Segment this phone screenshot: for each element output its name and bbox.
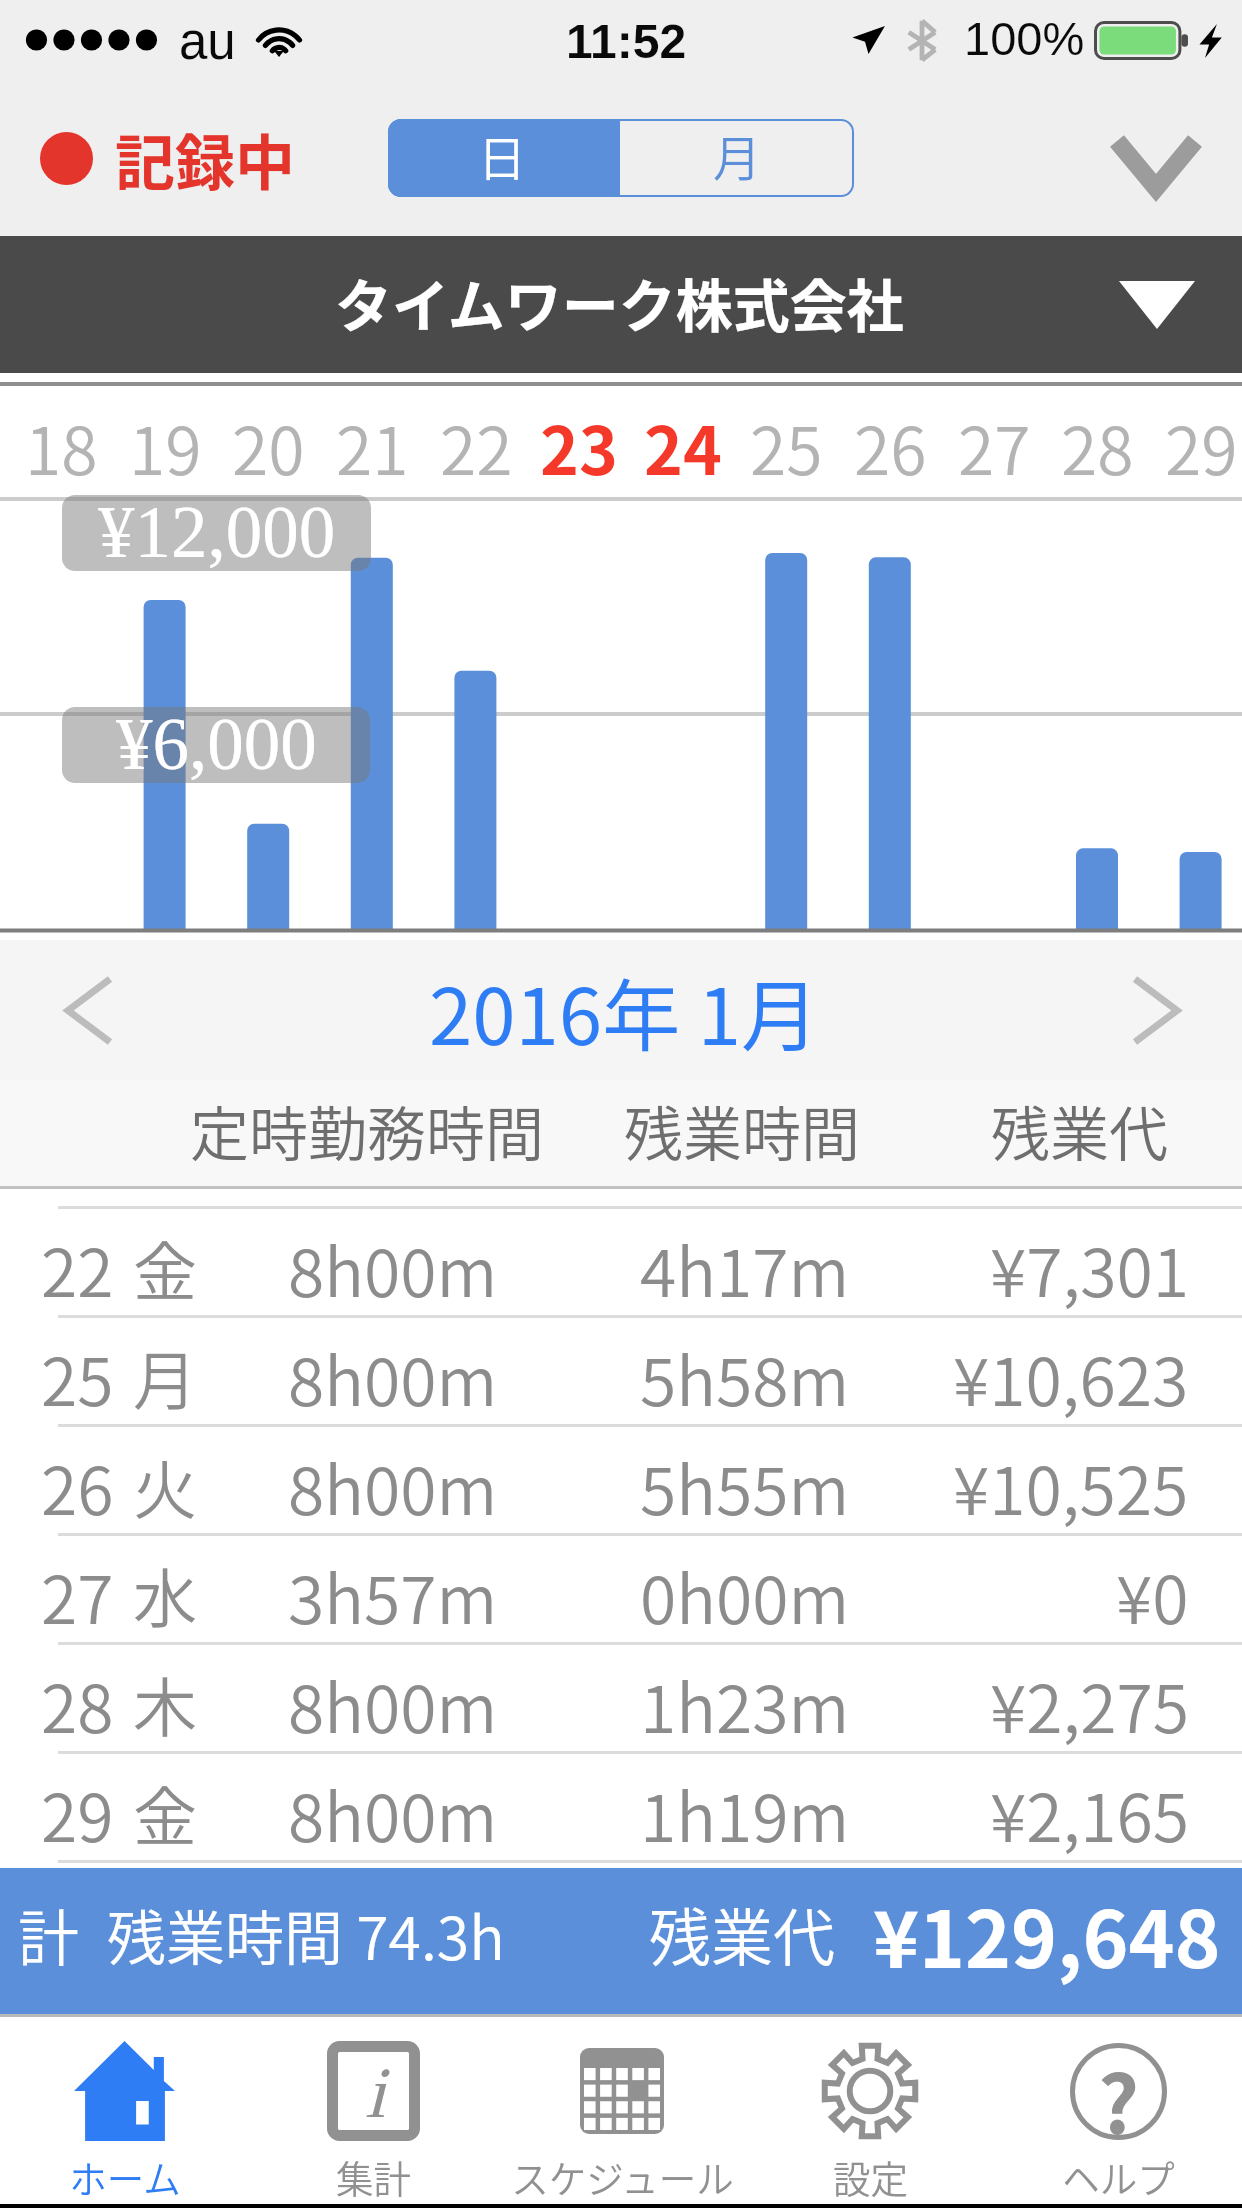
staticText: 27 bbox=[958, 398, 1031, 494]
staticText: ¥2,275 bbox=[990, 1656, 1189, 1752]
button[interactable]: Collapse bbox=[1086, 109, 1226, 219]
staticText: 計 bbox=[18, 1890, 80, 1978]
staticText: 記録中 bbox=[115, 115, 295, 202]
staticText: 21 bbox=[336, 398, 409, 494]
button[interactable]: i bbox=[249, 2017, 498, 2204]
staticText: スケジュール bbox=[511, 2149, 734, 2201]
staticText: i bbox=[365, 2053, 386, 2133]
staticText: 20 bbox=[232, 398, 305, 494]
staticText: 5h55m bbox=[640, 1438, 850, 1534]
staticText: 金 bbox=[133, 1766, 197, 1859]
staticText: 100% bbox=[964, 12, 1085, 65]
button[interactable]: Select company bbox=[1102, 250, 1212, 360]
staticText: ¥6,000 bbox=[116, 707, 317, 780]
staticText: 23 bbox=[540, 398, 618, 494]
staticText: 28 bbox=[1061, 398, 1134, 494]
staticText: 25 bbox=[750, 398, 823, 494]
staticText: 22 bbox=[440, 398, 513, 494]
staticText: 8h00m bbox=[288, 1220, 498, 1316]
staticText: 28 bbox=[41, 1656, 114, 1752]
button[interactable]: 設定 bbox=[746, 2017, 994, 2204]
staticText: 27 bbox=[41, 1547, 114, 1643]
button[interactable]: ホーム bbox=[0, 2017, 249, 2204]
button[interactable]: 27 bbox=[0, 1533, 1242, 1642]
staticText: ¥7,301 bbox=[990, 1220, 1189, 1316]
staticText: 月 bbox=[133, 1330, 197, 1423]
button[interactable]: 記録中 bbox=[0, 103, 315, 213]
staticText: 設定 bbox=[833, 2149, 908, 2201]
staticText: 11:52 bbox=[566, 15, 687, 69]
button[interactable]: 26 bbox=[0, 1424, 1242, 1533]
staticText: 残業時間 bbox=[624, 1088, 861, 1173]
button[interactable]: 29 bbox=[0, 1751, 1242, 1860]
staticText: 集計 bbox=[336, 2149, 411, 2201]
staticText: 1h19m bbox=[640, 1765, 850, 1861]
staticText: 2016年 1月 bbox=[429, 955, 819, 1068]
staticText: 22 bbox=[41, 1220, 114, 1316]
staticText: タイムワーク株式会社 bbox=[335, 261, 904, 344]
staticText: 月 bbox=[713, 120, 762, 190]
staticText: 8h00m bbox=[288, 1329, 498, 1425]
button[interactable]: Previous month bbox=[24, 945, 154, 1075]
staticText: 19 bbox=[129, 398, 202, 494]
staticText: 8h00m bbox=[288, 1765, 498, 1861]
staticText: 残業代 bbox=[991, 1088, 1169, 1173]
staticText: 25 bbox=[41, 1329, 114, 1425]
staticText: 29 bbox=[1165, 398, 1238, 494]
button[interactable]: 28 bbox=[0, 1642, 1242, 1751]
staticText: ヘルプ bbox=[1062, 2149, 1175, 2201]
staticText: 残業時間 74.3h bbox=[107, 1892, 505, 1977]
button[interactable]: Next month bbox=[1091, 945, 1221, 1075]
staticText: 8h00m bbox=[288, 1438, 498, 1534]
staticText: 0h00m bbox=[640, 1547, 850, 1643]
button[interactable]: 日 bbox=[388, 119, 620, 197]
staticText: 5h58m bbox=[640, 1329, 850, 1425]
staticText: ¥12,000 bbox=[98, 495, 336, 568]
staticText: 29 bbox=[41, 1765, 114, 1861]
button[interactable]: ? bbox=[994, 2017, 1242, 2204]
staticText: ¥129,648 bbox=[873, 1878, 1221, 1991]
staticText: 金 bbox=[133, 1221, 197, 1314]
staticText: 26 bbox=[854, 398, 927, 494]
staticText: ¥0 bbox=[1116, 1547, 1189, 1643]
button[interactable]: 25 bbox=[0, 1315, 1242, 1424]
staticText: ¥10,623 bbox=[953, 1329, 1189, 1425]
staticText: 木 bbox=[133, 1657, 197, 1750]
staticText: 1h23m bbox=[640, 1656, 850, 1752]
staticText: 日 bbox=[478, 120, 527, 190]
staticText: 8h00m bbox=[288, 1656, 498, 1752]
staticText: 水 bbox=[133, 1548, 197, 1641]
staticText: ¥10,525 bbox=[953, 1438, 1189, 1534]
staticText: ホーム bbox=[69, 2149, 181, 2201]
staticText: 火 bbox=[133, 1439, 197, 1532]
staticText: 4h17m bbox=[640, 1220, 850, 1316]
staticText: 定時勤務時間 bbox=[190, 1088, 545, 1173]
button[interactable]: スケジュール bbox=[498, 2017, 746, 2204]
staticText: 26 bbox=[41, 1438, 114, 1534]
staticText: 残業代 bbox=[649, 1889, 836, 1979]
staticText: au bbox=[179, 13, 236, 70]
staticText: 18 bbox=[25, 398, 98, 494]
staticText: 3h57m bbox=[288, 1547, 498, 1643]
button[interactable]: 月 bbox=[620, 119, 854, 197]
staticText: ? bbox=[1098, 2041, 1140, 2138]
staticText: 24 bbox=[644, 398, 722, 494]
button[interactable]: 22 bbox=[0, 1206, 1242, 1315]
staticText: ¥2,165 bbox=[990, 1765, 1189, 1861]
